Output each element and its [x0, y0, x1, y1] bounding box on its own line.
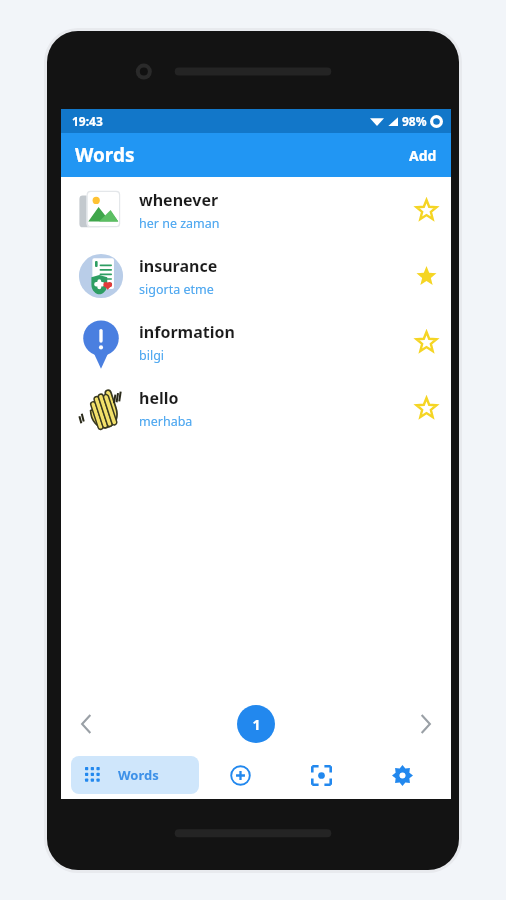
button[interactable]: hello: [61, 375, 451, 441]
button[interactable]: Add word: [199, 751, 281, 799]
staticText: insurance: [139, 255, 218, 277]
staticText: Words: [118, 766, 159, 784]
staticText: 98%: [402, 113, 427, 129]
staticText: merhaba: [139, 413, 193, 430]
staticText: hello: [139, 387, 179, 409]
button[interactable]: Favorite whenever: [402, 188, 451, 233]
staticText: whenever: [139, 189, 219, 211]
button[interactable]: Next page: [400, 703, 451, 745]
button[interactable]: Scan: [281, 751, 362, 799]
staticText: sigorta etme: [139, 281, 214, 298]
staticText: information: [139, 321, 235, 343]
staticText: 19:43: [72, 113, 103, 129]
button[interactable]: Unfavorite insurance: [402, 254, 451, 299]
button[interactable]: Favorite hello: [402, 386, 451, 431]
button[interactable]: 1: [237, 705, 275, 743]
button[interactable]: insurance: [61, 243, 451, 309]
button[interactable]: Previous page: [61, 703, 112, 745]
staticText: bilgi: [139, 347, 165, 364]
button[interactable]: Add: [395, 136, 451, 175]
button[interactable]: information: [61, 309, 451, 375]
button[interactable]: Favorite information: [402, 320, 451, 365]
staticText: Add: [409, 146, 437, 165]
staticText: Words: [75, 142, 135, 168]
staticText: 1: [252, 715, 261, 734]
button[interactable]: Settings: [362, 751, 443, 799]
button[interactable]: whenever: [61, 177, 451, 243]
staticText: her ne zaman: [139, 215, 220, 232]
button[interactable]: Words: [71, 756, 199, 794]
